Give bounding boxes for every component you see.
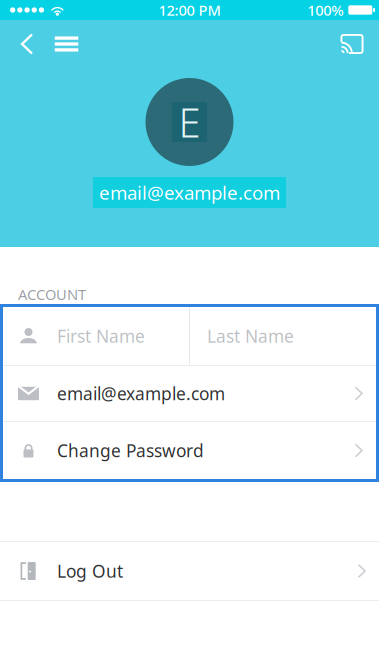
staticText: First Name <box>57 324 145 347</box>
staticText: Log Out <box>57 559 123 582</box>
staticText: ACCOUNT <box>18 284 86 304</box>
staticText: 12:00 PM <box>158 0 220 20</box>
button[interactable]: First Name <box>3 307 189 365</box>
button[interactable]: email@example.com <box>3 366 376 421</box>
button[interactable]: Last Name <box>190 307 376 365</box>
staticText: Change Password <box>57 439 204 462</box>
button[interactable]: Log Out <box>0 542 379 600</box>
button[interactable]: Cast <box>330 20 370 64</box>
staticText: email@example.com <box>57 382 225 405</box>
button[interactable]: Back <box>7 20 47 64</box>
button[interactable]: Change Password <box>3 422 376 479</box>
staticText: 100% <box>307 0 343 20</box>
staticText: E <box>178 95 200 148</box>
staticText: email@example.com <box>99 180 280 205</box>
button[interactable]: Menu <box>47 20 86 64</box>
staticText: Last Name <box>207 324 294 347</box>
